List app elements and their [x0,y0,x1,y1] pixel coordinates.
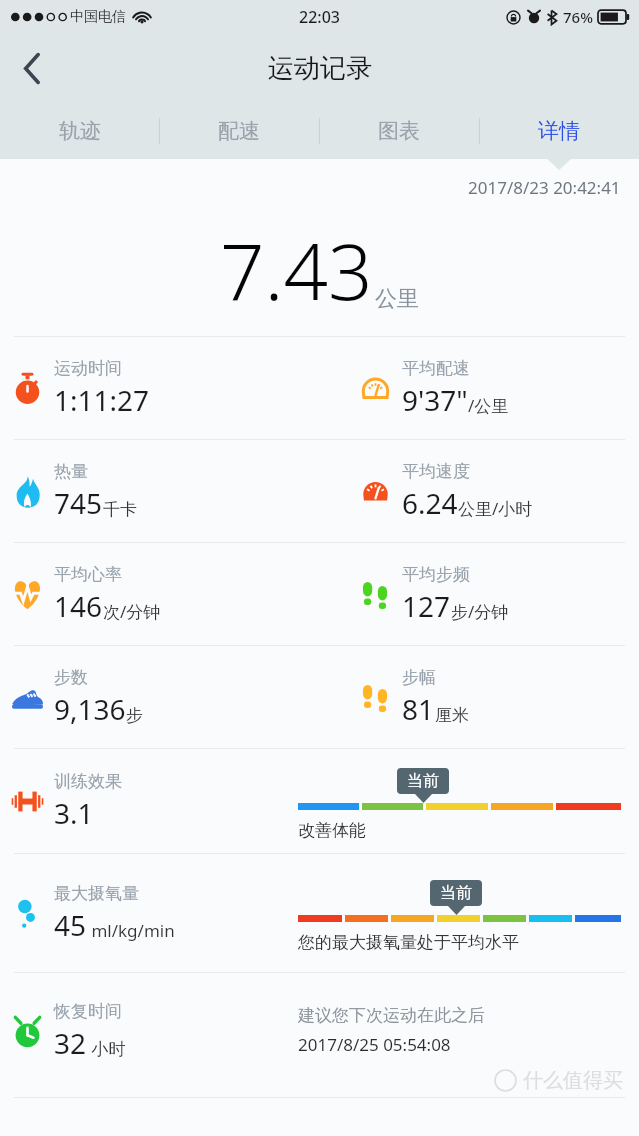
button[interactable]: 配速 [159,103,319,159]
staticText: 千卡 [103,499,137,520]
staticText: /公里 [468,394,509,417]
staticText: 厘米 [435,705,469,726]
staticText: 9,136 [54,690,126,728]
staticText: 运动记录 [268,52,372,85]
staticText: 22:03 [299,6,340,28]
staticText: 训练效果 [54,771,122,792]
staticText: 小时 [87,1037,126,1060]
staticText: 745 [54,484,103,522]
staticText: 公里/小时 [458,497,533,520]
staticText: 步幅 [402,667,436,688]
staticText: 3.1 [54,794,94,832]
staticText: 公里 [375,285,419,313]
staticText: 热量 [54,461,88,482]
staticText: 平均步频 [402,564,470,585]
staticText: 步/分钟 [451,600,509,623]
staticText: 您的最大摄氧量处于平均水平 [298,932,519,953]
staticText: 当前 [407,771,439,791]
button[interactable]: 训练效果 [0,749,639,853]
staticText: 平均速度 [402,461,470,482]
staticText: 146 [54,587,103,625]
button[interactable]: Back [6,42,58,94]
button[interactable]: 详情 [479,103,639,159]
staticText: 改善体能 [298,820,366,841]
staticText: 1:11:27 [54,381,150,419]
staticText: 最大摄氧量 [54,883,139,904]
button[interactable]: 运动时间 [0,337,639,439]
staticText: 45 [54,906,87,944]
staticText: 配速 [218,118,260,144]
staticText: 32 [54,1024,87,1062]
staticText: 127 [402,587,451,625]
staticText: 恢复时间 [54,1001,122,1022]
button[interactable]: 步数 [0,646,639,748]
staticText: 步 [126,705,143,726]
staticText: 中国电信 [70,8,126,26]
staticText: 平均心率 [54,564,122,585]
staticText: 次/分钟 [103,600,161,623]
staticText: 2017/8/23 20:42:41 [468,176,621,199]
staticText: 9'37" [402,381,468,419]
button[interactable]: 最大摄氧量 [0,854,639,972]
staticText: 2017/8/25 05:54:08 [298,1033,451,1056]
staticText: 76% [563,7,593,27]
staticText: 建议您下次运动在此之后 [298,1005,485,1026]
staticText: 步数 [54,667,88,688]
button[interactable]: 恢复时间 [0,973,639,1097]
button[interactable]: 平均心率 [0,543,639,645]
staticText: 轨迹 [59,118,101,144]
button[interactable]: 图表 [319,103,479,159]
staticText: 详情 [538,118,580,144]
button[interactable]: 热量 [0,440,639,542]
staticText: 什么值得买 [523,1068,623,1093]
staticText: 81 [402,690,435,728]
staticText: 6.24 [402,484,458,522]
staticText: 7.43 [220,217,373,323]
staticText: 运动时间 [54,358,122,379]
staticText: 平均配速 [402,358,470,379]
staticText: 当前 [440,883,472,903]
staticText: ml/kg/min [87,919,175,942]
button[interactable]: 轨迹 [0,103,159,159]
staticText: 图表 [378,118,420,144]
